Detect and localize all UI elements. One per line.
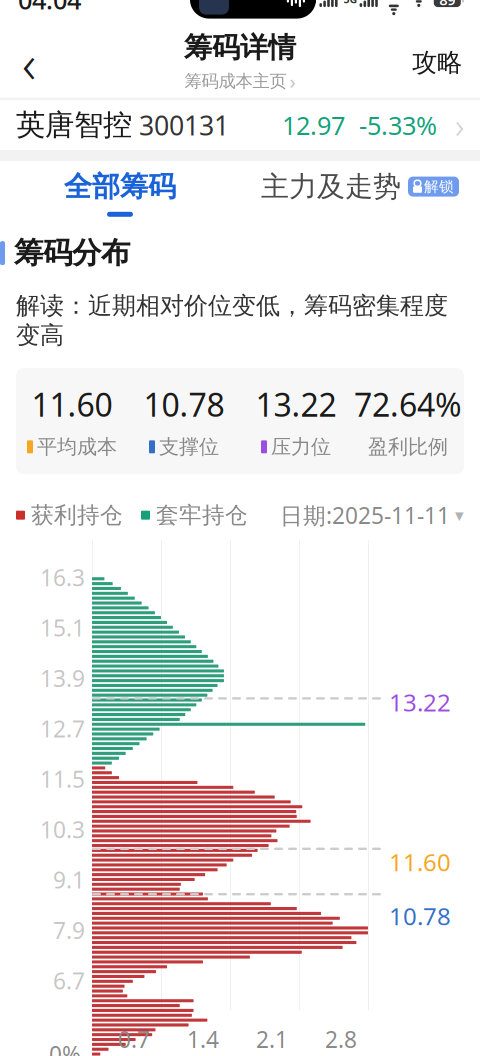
- staticText: 89: [439, 0, 455, 9]
- staticText: 9.1: [53, 865, 85, 895]
- staticText: 攻略: [412, 47, 462, 78]
- staticText: 盈利比例: [368, 435, 448, 459]
- staticText: 11.5: [40, 764, 85, 794]
- staticText: 5G: [303, 0, 317, 6]
- staticText: 日期:2025-11-11: [280, 500, 450, 530]
- button[interactable]: 攻略: [394, 30, 480, 96]
- staticText: -5.33%: [345, 108, 437, 142]
- staticText: 11.60: [389, 846, 451, 878]
- staticText: 12.97: [282, 108, 345, 142]
- staticText: 平均成本: [37, 435, 117, 459]
- staticText: 10.78: [143, 383, 224, 426]
- staticText: 2.8%: [325, 1024, 357, 1056]
- staticText: 13.22: [389, 686, 451, 718]
- staticText: 0%: [49, 1039, 81, 1056]
- staticText: 筹码分布: [14, 235, 130, 271]
- staticText: 11.60: [31, 383, 112, 426]
- button[interactable]: 返回: [0, 30, 58, 96]
- staticText: 15.1: [40, 613, 85, 643]
- staticText: 主力及走势: [261, 169, 401, 204]
- button[interactable]: 筹码详情: [184, 31, 296, 95]
- staticText: 解锁: [424, 178, 454, 196]
- staticText: 英唐智控: [16, 107, 132, 143]
- staticText: ›: [437, 102, 464, 148]
- staticText: ›: [289, 68, 295, 95]
- staticText: 13.9: [40, 663, 85, 693]
- staticText: 支撑位: [159, 435, 219, 459]
- staticText: 1.4%: [187, 1024, 219, 1056]
- staticText: 10.3: [40, 814, 85, 844]
- staticText: 16.3: [40, 562, 85, 592]
- staticText: 5G: [344, 0, 358, 6]
- staticText: 2.1%: [256, 1024, 288, 1056]
- staticText: 12.7: [40, 714, 85, 744]
- staticText: 13.22: [255, 383, 336, 426]
- staticText: 筹码成本主页: [184, 71, 286, 92]
- staticText: 压力位: [271, 435, 331, 459]
- button[interactable]: 全部筹码: [0, 161, 240, 225]
- button[interactable]: 英唐智控: [0, 100, 480, 150]
- staticText: 6.7: [53, 966, 85, 996]
- staticText: 10.78: [389, 900, 451, 932]
- staticText: 获利持仓: [31, 501, 123, 529]
- staticText: 解读：近期相对价位变低，筹码密集程度变高: [16, 291, 448, 350]
- button[interactable]: 日期:2025-11-11: [280, 500, 464, 530]
- staticText: 套牢持仓: [156, 501, 248, 529]
- staticText: ▾: [455, 505, 464, 525]
- staticText: 72.64%: [354, 383, 462, 426]
- staticText: 7.9: [53, 915, 85, 945]
- staticText: 300131: [132, 107, 229, 143]
- staticText: 筹码详情: [184, 31, 296, 65]
- staticText: ‹: [22, 27, 36, 98]
- staticText: 全部筹码: [64, 169, 176, 204]
- staticText: 04:04: [18, 0, 81, 16]
- staticText: 0.7%: [118, 1024, 150, 1056]
- button[interactable]: 主力及走势: [240, 161, 480, 225]
